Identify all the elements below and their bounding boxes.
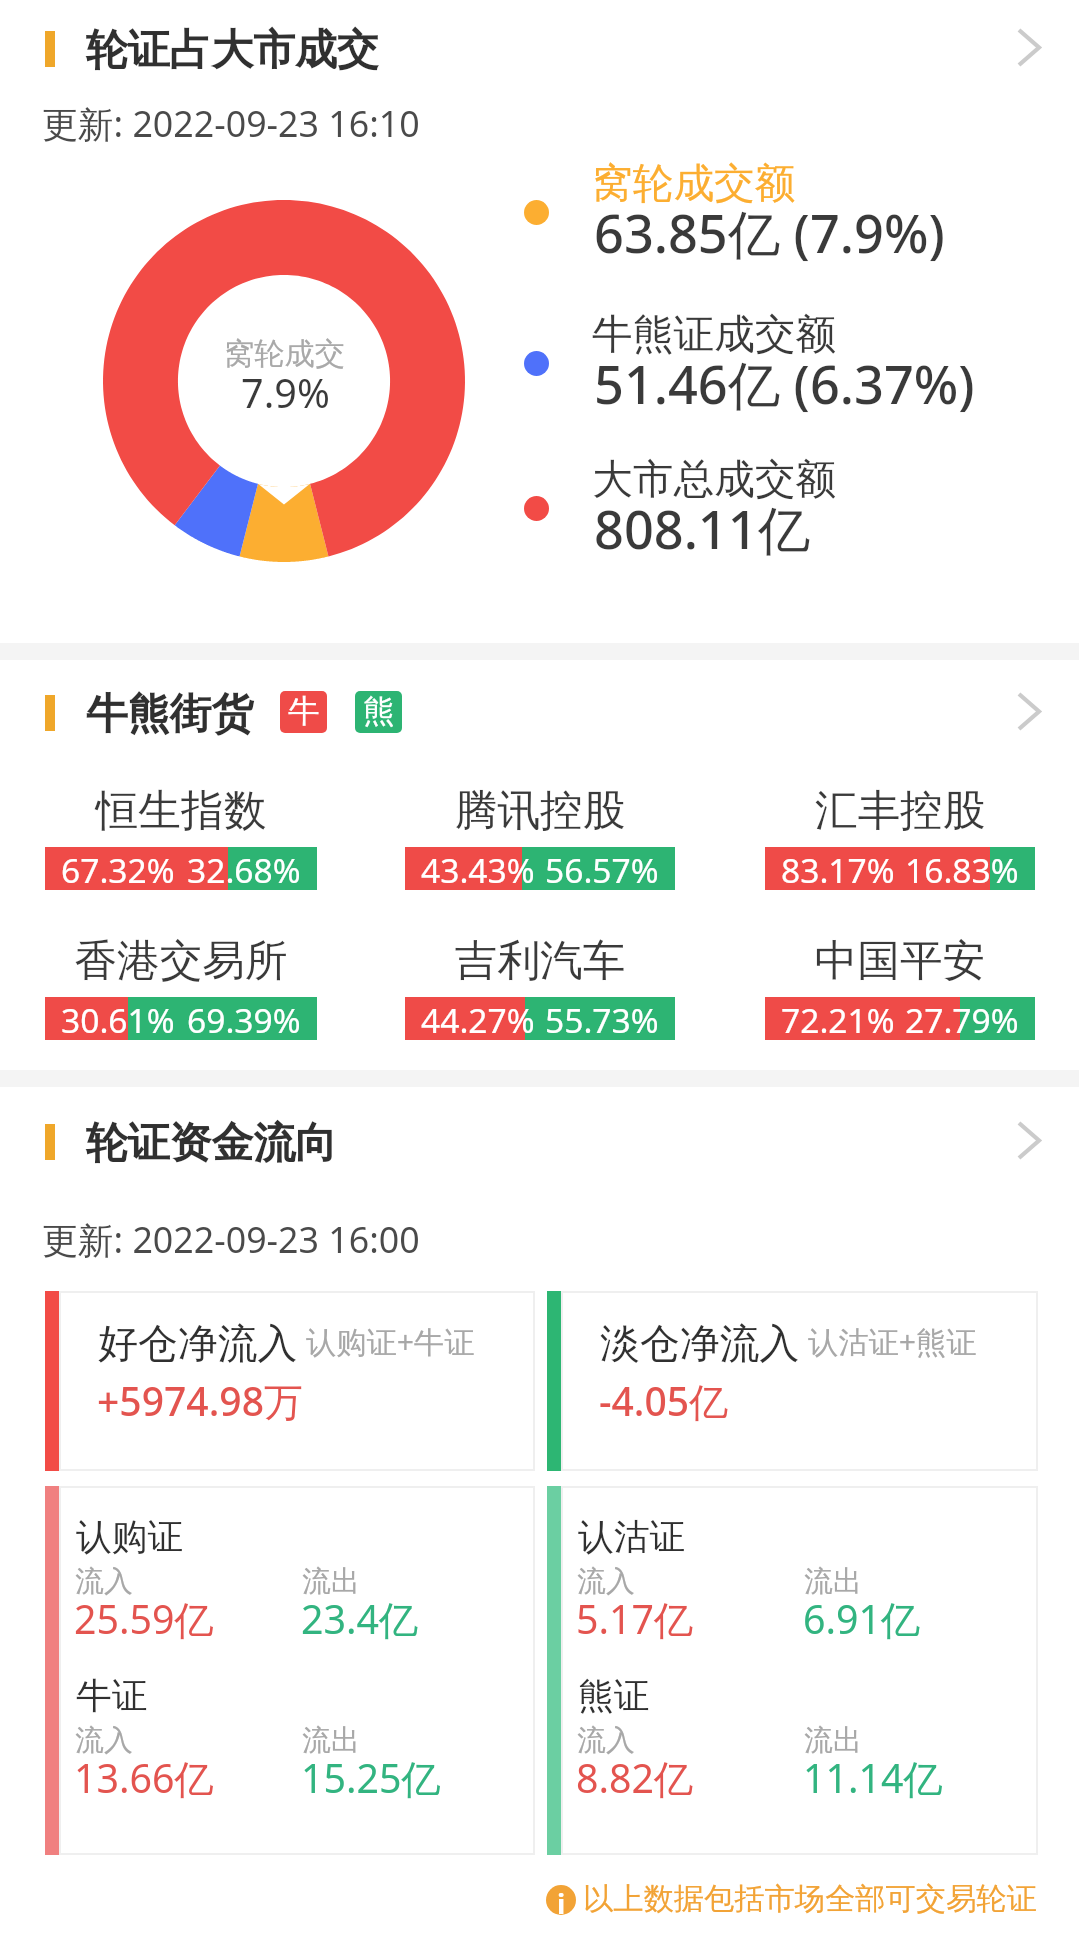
staticText: 牛熊街货 [86, 688, 254, 741]
staticText: 认购证 [76, 1515, 184, 1560]
staticText: 牛 [288, 692, 320, 732]
staticText: 11.14亿 [803, 1751, 943, 1805]
staticText: 牛熊证成交额 [592, 309, 837, 360]
staticText: 流入 [577, 1722, 635, 1758]
staticText: 51.46亿 (6.37%) [594, 348, 975, 419]
staticText: 熊 [363, 692, 395, 732]
staticText: 认沽证+熊证 [808, 1321, 977, 1362]
staticText: 83.17% [781, 847, 895, 890]
staticText: +5974.98万 [97, 1374, 304, 1427]
button[interactable]: i [538, 1872, 1044, 1928]
button[interactable]: 香港交易所 [45, 924, 317, 1056]
staticText: 以上数据包括市场全部可交易轮证 [583, 1880, 1037, 1918]
staticText: 13.66亿 [74, 1751, 214, 1805]
staticText: 流入 [75, 1563, 133, 1599]
staticText: 中国平安 [765, 934, 1035, 988]
button[interactable]: 轮证资金流向 [0, 1100, 1079, 1184]
staticText: 流出 [804, 1563, 862, 1599]
staticText: 72.21% [781, 997, 895, 1040]
staticText: 5.17亿 [576, 1592, 694, 1646]
staticText: 熊证 [578, 1674, 650, 1719]
button[interactable]: More 牛熊街货 [997, 679, 1061, 743]
staticText: 恒生指数 [45, 784, 317, 838]
staticText: 好仓净流入 [98, 1319, 298, 1369]
button[interactable]: More 轮证占大市成交 [997, 15, 1061, 79]
staticText: 25.59亿 [74, 1592, 214, 1646]
staticText: 流入 [577, 1563, 635, 1599]
button[interactable]: 腾讯控股 [405, 774, 675, 906]
staticText: 63.85亿 (7.9%) [594, 197, 945, 268]
staticText: 流出 [804, 1722, 862, 1758]
staticText: 流出 [302, 1563, 360, 1599]
staticText: 27.79% [905, 997, 1019, 1040]
staticText: 轮证资金流向 [86, 1117, 337, 1170]
button[interactable]: 轮证占大市成交 [0, 7, 1079, 91]
staticText: 认沽证 [578, 1515, 686, 1560]
staticText: 流出 [302, 1722, 360, 1758]
staticText: 56.57% [545, 847, 659, 890]
staticText: 8.82亿 [576, 1751, 694, 1805]
button[interactable]: 淡仓净流入 [547, 1291, 1038, 1471]
staticText: 认购证+牛证 [306, 1321, 475, 1362]
button[interactable]: 中国平安 [765, 924, 1035, 1056]
button[interactable]: 牛熊街货 [0, 671, 1079, 755]
staticText: 更新: 2022-09-23 16:10 [42, 99, 420, 148]
staticText: 69.39% [187, 997, 301, 1040]
staticText: 大市总成交额 [592, 454, 837, 505]
button[interactable]: 汇丰控股 [765, 774, 1035, 906]
staticText: 窝轮成交额 [592, 158, 796, 209]
staticText: 窝轮成交 [224, 335, 345, 373]
staticText: 67.32% [61, 847, 175, 890]
button[interactable]: 好仓净流入 [45, 1291, 535, 1471]
staticText: 808.11亿 [594, 493, 810, 564]
staticText: 流入 [75, 1722, 133, 1758]
staticText: 更新: 2022-09-23 16:00 [42, 1215, 420, 1264]
staticText: 吉利汽车 [405, 934, 675, 988]
staticText: 43.43% [421, 847, 535, 890]
button[interactable]: 认购证 [45, 1486, 535, 1855]
staticText: 腾讯控股 [405, 784, 675, 838]
staticText: 15.25亿 [301, 1751, 441, 1805]
staticText: 7.9% [241, 366, 330, 420]
button[interactable]: 恒生指数 [45, 774, 317, 906]
staticText: 淡仓净流入 [600, 1319, 800, 1369]
staticText: 6.91亿 [803, 1592, 921, 1646]
button[interactable]: 认沽证 [547, 1486, 1038, 1855]
staticText: 32.68% [187, 847, 301, 890]
staticText: 30.61% [61, 997, 175, 1040]
staticText: 55.73% [545, 997, 659, 1040]
staticText: -4.05亿 [599, 1374, 729, 1427]
staticText: 23.4亿 [301, 1592, 419, 1646]
button[interactable]: 吉利汽车 [405, 924, 675, 1056]
staticText: 16.83% [905, 847, 1019, 890]
staticText: i [557, 1885, 566, 1915]
staticText: 轮证占大市成交 [86, 24, 379, 77]
staticText: 香港交易所 [45, 934, 317, 988]
staticText: 牛证 [76, 1674, 148, 1719]
staticText: 44.27% [421, 997, 535, 1040]
staticText: 汇丰控股 [765, 784, 1035, 838]
button[interactable]: More 轮证资金流向 [997, 1108, 1061, 1172]
